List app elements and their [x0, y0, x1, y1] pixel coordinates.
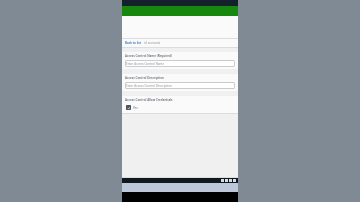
- staticText: Access Control Description: [125, 76, 164, 80]
- button[interactable]: Enter Access Control Name: [125, 60, 235, 67]
- staticText: Yes: [133, 106, 138, 110]
- staticText: of accounts: [144, 41, 161, 45]
- other: Allow credentials: [126, 105, 131, 110]
- staticText: Access Control Allow Credentials: [125, 98, 173, 102]
- button[interactable]: Back to list: [125, 41, 142, 45]
- button[interactable]: Allow credentials: [125, 104, 139, 111]
- button[interactable]: Enter Access Control Description: [125, 82, 235, 89]
- staticText: Enter Access Control Name: [126, 62, 165, 66]
- staticText: Enter Access Control Description: [126, 84, 172, 88]
- staticText: Access Control Name (Required): [125, 54, 172, 58]
